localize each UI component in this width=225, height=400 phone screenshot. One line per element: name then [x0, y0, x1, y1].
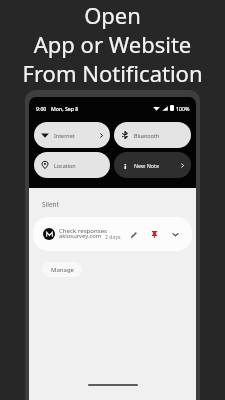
staticText: New Note [134, 162, 160, 169]
button[interactable]: Bluetooth [114, 122, 191, 148]
staticText: Bluetooth [134, 132, 160, 139]
staticText: Location [54, 162, 76, 169]
button[interactable]: Check responses [33, 217, 192, 251]
staticText: akiosurvey.com [59, 232, 102, 240]
button[interactable]: Edit [127, 228, 140, 241]
staticText: Manage [51, 266, 74, 274]
button[interactable]: j [114, 152, 191, 178]
staticText: 100% [176, 105, 190, 112]
staticText: Open App or Website From Notification [0, 0, 225, 88]
staticText: Internet [54, 132, 75, 139]
button[interactable]: Location [34, 152, 110, 178]
button[interactable]: Expand [169, 228, 182, 241]
staticText: j [124, 161, 127, 169]
staticText: 2 days [105, 233, 121, 240]
button[interactable]: Pin [148, 228, 161, 241]
button[interactable]: Internet [34, 122, 110, 148]
staticText: 9:00 [36, 105, 47, 112]
button[interactable]: Manage [42, 262, 82, 277]
staticText: Mon, Sep 8 [51, 105, 79, 112]
staticText: Check responses [59, 226, 108, 234]
staticText: Silent [42, 200, 59, 209]
